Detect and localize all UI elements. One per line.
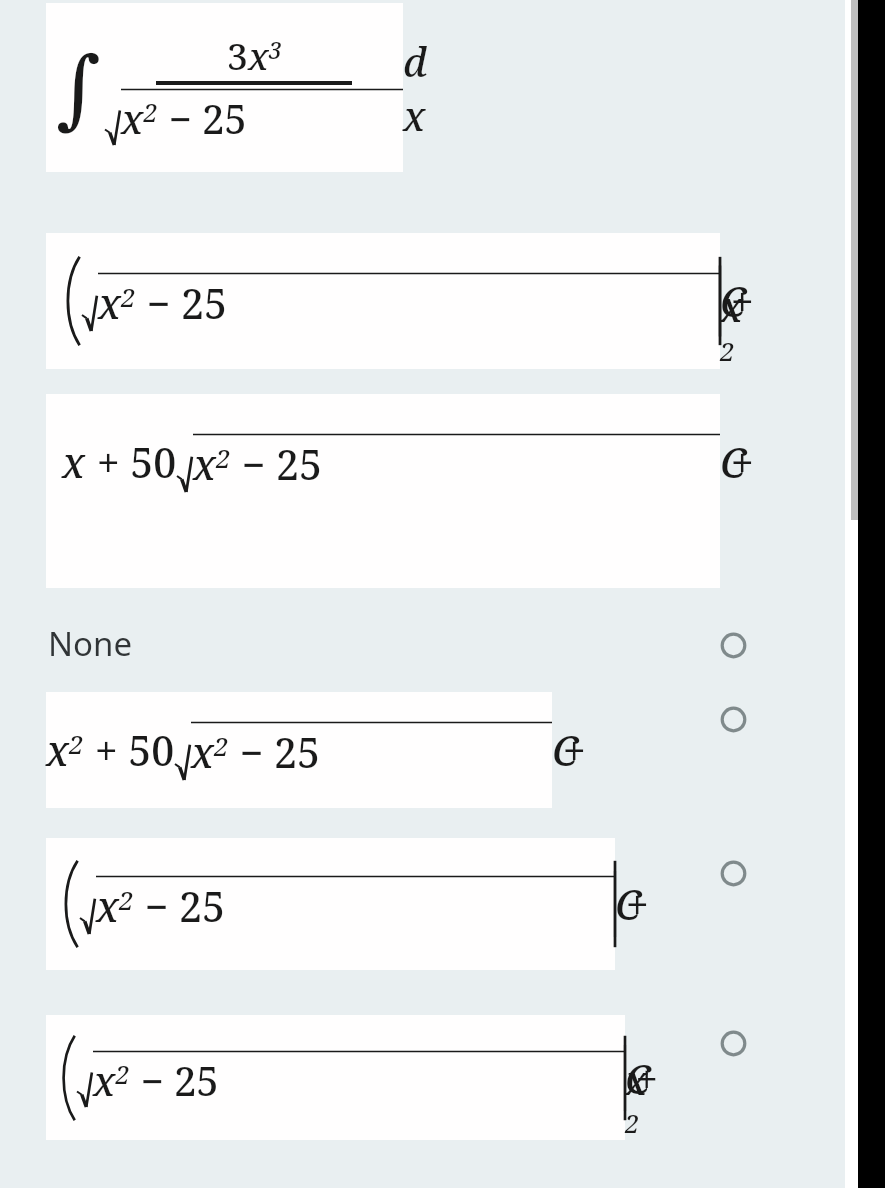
staticText: None [48,621,133,666]
button[interactable]: Select option 2 [714,700,752,738]
staticText: ∫ [56,38,101,138]
staticText: x2 [98,275,136,331]
staticText: x3 [248,30,282,80]
staticText: + 50 [84,722,175,778]
button[interactable]: ∫ [46,3,403,172]
staticText: x2 [96,878,134,934]
button[interactable]: Select None [714,626,752,664]
staticText: x [62,434,86,490]
staticText: x2 [93,1053,130,1107]
button[interactable]: None [30,608,720,678]
button[interactable]: x2 [46,838,615,970]
button[interactable]: x2 [46,692,552,808]
staticText: x2 [193,436,231,492]
staticText: − 25 [158,91,247,145]
staticText: + 50 [86,434,177,490]
staticText: − 25 [231,436,322,492]
button[interactable]: x2 [46,1015,625,1140]
staticText: − 25 [130,1053,219,1107]
staticText: x2 [121,91,158,145]
button[interactable]: Select option 3 [714,854,752,892]
staticText: x2 [191,724,229,780]
staticText: − 25 [229,724,320,780]
staticText: 3 [227,30,248,80]
staticText: x2 [46,722,84,778]
button[interactable]: x2 [46,233,720,369]
button[interactable]: Select option 4 [714,1024,752,1062]
staticText: − 25 [134,878,225,934]
button[interactable]: x [46,394,720,588]
staticText: − 25 [136,275,227,331]
